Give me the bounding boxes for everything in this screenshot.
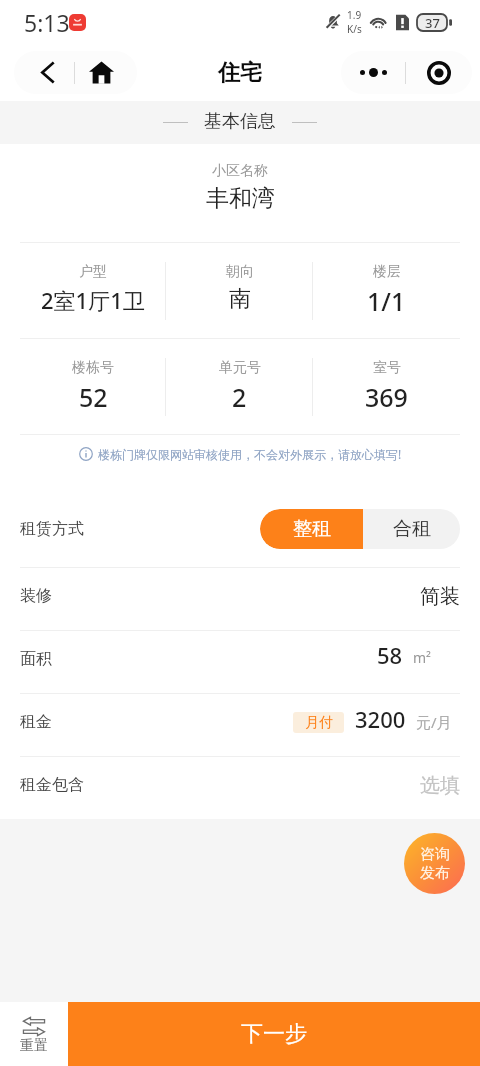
button[interactable]: More options <box>341 51 405 94</box>
button[interactable]: 小区名称 <box>0 144 480 242</box>
button[interactable]: 装修 <box>0 568 480 630</box>
staticText: 面积 <box>20 649 52 669</box>
staticText: m² <box>413 648 431 667</box>
staticText: 丰和湾 <box>206 184 275 213</box>
button[interactable]: 合租 <box>363 509 460 549</box>
button[interactable]: 楼层 <box>313 243 460 338</box>
staticText: 下一步 <box>241 1020 307 1048</box>
staticText: 基本信息 <box>204 110 276 133</box>
button[interactable]: 整租 <box>260 509 363 549</box>
button[interactable]: 咨询 <box>404 833 465 894</box>
button[interactable]: 楼栋号 <box>20 339 166 434</box>
staticText: 户型 <box>79 263 107 281</box>
staticText: 5:13 <box>24 7 70 38</box>
staticText: 住宅 <box>218 59 262 87</box>
staticText: 楼层 <box>373 263 401 281</box>
staticText: 合租 <box>393 517 431 541</box>
staticText: 租金 <box>20 712 52 732</box>
button[interactable]: 租金 <box>0 694 480 756</box>
staticText: 369 <box>365 380 408 414</box>
staticText: 朝向 <box>226 263 254 281</box>
button[interactable]: 租金包含 <box>0 757 480 819</box>
staticText: 52 <box>79 380 108 414</box>
staticText: 单元号 <box>219 359 261 377</box>
staticText: 月付 <box>305 714 333 732</box>
staticText: 2室1厅1卫 <box>41 285 145 315</box>
staticText: 咨询 <box>420 845 450 864</box>
staticText: 楼栋号 <box>72 359 114 377</box>
button[interactable]: 室号 <box>313 339 460 434</box>
staticText: 1.9 <box>347 8 362 22</box>
button[interactable]: 单元号 <box>166 339 313 434</box>
button[interactable]: 朝向 <box>166 243 313 338</box>
staticText: 37 <box>425 14 440 32</box>
button[interactable]: 下一步 <box>68 1002 480 1066</box>
staticText: 元/月 <box>416 712 452 732</box>
staticText: 58 <box>377 640 403 670</box>
staticText: K/s <box>347 22 362 36</box>
staticText: 选填 <box>420 773 460 798</box>
staticText: 室号 <box>373 359 401 377</box>
staticText: 1/1 <box>367 284 406 318</box>
staticText: 南 <box>229 285 251 313</box>
staticText: 3200 <box>355 704 406 734</box>
button[interactable]: 面积 <box>0 631 480 693</box>
staticText: 小区名称 <box>212 162 268 180</box>
staticText: 发布 <box>420 864 450 883</box>
staticText: 楼栋门牌仅限网站审核使用，不会对外展示，请放心填写! <box>98 446 402 462</box>
staticText: 2 <box>232 380 247 414</box>
staticText: 租金包含 <box>20 775 84 795</box>
staticText: 重置 <box>20 1037 48 1055</box>
button[interactable]: Record <box>406 51 472 94</box>
staticText: 简装 <box>420 584 460 609</box>
staticText: 装修 <box>20 586 52 606</box>
button[interactable]: Home <box>75 51 137 94</box>
button[interactable]: 户型 <box>20 243 166 338</box>
button[interactable]: Reset <box>0 1002 68 1066</box>
staticText: 整租 <box>293 517 331 541</box>
staticText: 租赁方式 <box>20 519 84 539</box>
button[interactable]: Back <box>14 51 74 94</box>
